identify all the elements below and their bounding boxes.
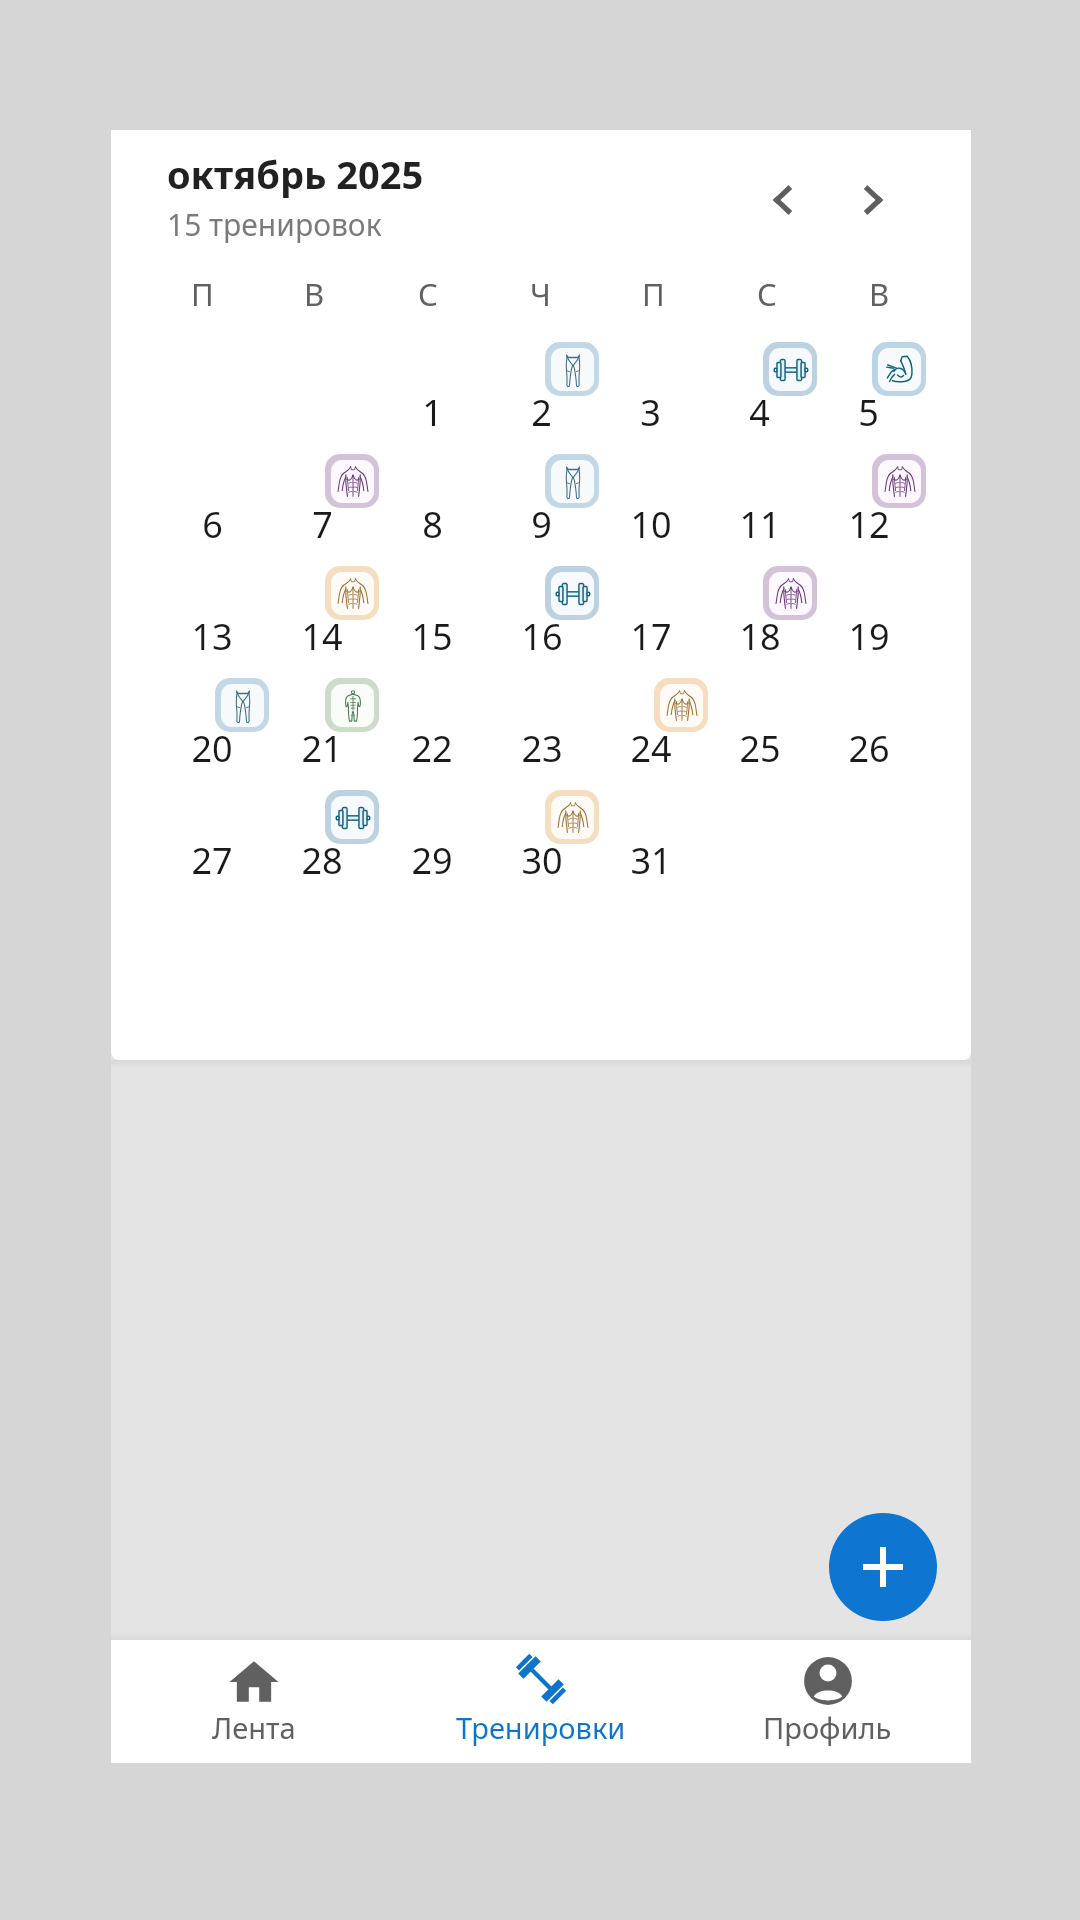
staticText: 10: [630, 500, 672, 549]
button[interactable]: 9: [487, 441, 596, 553]
staticText: 13: [191, 612, 233, 661]
button[interactable]: 5: [814, 329, 923, 441]
staticText: 3: [640, 388, 661, 437]
staticText: 24: [630, 724, 672, 773]
staticText: 1: [422, 388, 443, 437]
staticText: 25: [739, 724, 781, 773]
staticText: 31: [630, 836, 672, 885]
staticText: 11: [739, 500, 781, 549]
staticText: 28: [301, 836, 343, 885]
button[interactable]: 29: [377, 777, 487, 889]
button[interactable]: Лента: [111, 1640, 397, 1763]
button[interactable]: 18: [705, 553, 814, 665]
staticText: 9: [531, 500, 552, 549]
button[interactable]: 26: [814, 665, 923, 777]
staticText: 6: [202, 500, 223, 549]
staticText: 23: [521, 724, 563, 773]
button[interactable]: 20: [157, 665, 267, 777]
button[interactable]: Предыдущий месяц: [743, 160, 823, 240]
staticText: 15 тренировок: [167, 204, 382, 245]
staticText: С: [418, 273, 438, 315]
button[interactable]: 24: [596, 665, 705, 777]
button[interactable]: 30: [487, 777, 596, 889]
button[interactable]: 13: [157, 553, 267, 665]
button[interactable]: 3: [596, 329, 705, 441]
staticText: П: [642, 273, 665, 315]
staticText: 12: [848, 500, 890, 549]
button[interactable]: 4: [705, 329, 814, 441]
button[interactable]: 25: [705, 665, 814, 777]
staticText: 19: [848, 612, 890, 661]
button[interactable]: 7: [267, 441, 377, 553]
button[interactable]: Добавить тренировку: [829, 1513, 937, 1621]
button[interactable]: 19: [814, 553, 923, 665]
staticText: 20: [191, 724, 233, 773]
staticText: 15: [411, 612, 453, 661]
button[interactable]: 22: [377, 665, 487, 777]
staticText: 27: [191, 836, 233, 885]
staticText: Тренировки: [456, 1708, 626, 1747]
button[interactable]: 8: [377, 441, 487, 553]
staticText: В: [869, 273, 890, 315]
button[interactable]: 16: [487, 553, 596, 665]
staticText: 21: [301, 724, 343, 773]
staticText: 16: [521, 612, 563, 661]
button[interactable]: Следующий месяц: [833, 160, 913, 240]
staticText: 17: [630, 612, 672, 661]
staticText: Лента: [212, 1708, 296, 1747]
button[interactable]: 28: [267, 777, 377, 889]
button[interactable]: 11: [705, 441, 814, 553]
button[interactable]: 2: [487, 329, 596, 441]
staticText: октябрь 2025: [167, 148, 424, 200]
staticText: 26: [848, 724, 890, 773]
staticText: 7: [312, 500, 333, 549]
staticText: Профиль: [763, 1708, 892, 1747]
button[interactable]: 10: [596, 441, 705, 553]
staticText: Ч: [530, 273, 551, 315]
staticText: 5: [858, 388, 879, 437]
staticText: 22: [411, 724, 453, 773]
button[interactable]: 31: [596, 777, 705, 889]
staticText: П: [191, 273, 214, 315]
button[interactable]: 6: [157, 441, 267, 553]
button[interactable]: 21: [267, 665, 377, 777]
button[interactable]: 23: [487, 665, 596, 777]
button[interactable]: 27: [157, 777, 267, 889]
button[interactable]: 12: [814, 441, 923, 553]
button[interactable]: 1: [377, 329, 487, 441]
staticText: 4: [749, 388, 770, 437]
staticText: 14: [301, 612, 343, 661]
button[interactable]: 15: [377, 553, 487, 665]
staticText: 18: [739, 612, 781, 661]
staticText: В: [304, 273, 325, 315]
button[interactable]: 14: [267, 553, 377, 665]
staticText: 29: [411, 836, 453, 885]
button[interactable]: Тренировки: [397, 1640, 684, 1763]
button[interactable]: 17: [596, 553, 705, 665]
staticText: С: [757, 273, 777, 315]
button[interactable]: Профиль: [684, 1640, 971, 1763]
staticText: 2: [531, 388, 552, 437]
staticText: 30: [521, 836, 563, 885]
staticText: 8: [422, 500, 443, 549]
